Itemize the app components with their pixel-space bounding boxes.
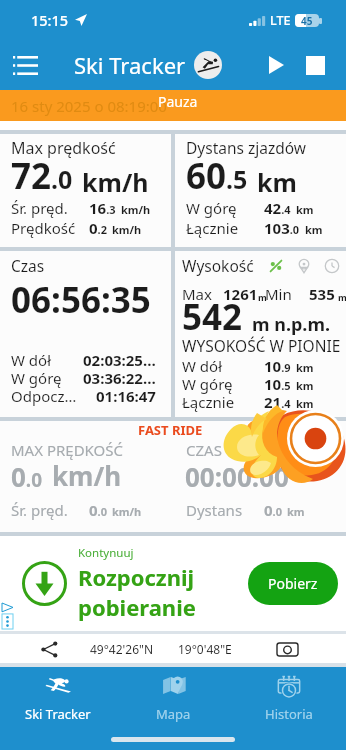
staticText: km	[296, 378, 314, 393]
staticText: W dół	[11, 350, 52, 370]
staticText: km	[296, 202, 314, 217]
staticText: 10.5	[264, 374, 291, 394]
button[interactable]: Stop	[296, 43, 334, 87]
staticText: km/h	[82, 165, 149, 199]
staticText: 16 sty 2025 o 08:19:00	[11, 96, 167, 116]
button[interactable]: Wysokość	[175, 251, 346, 417]
staticText: 0.0	[264, 500, 282, 520]
staticText: Wysokość	[182, 255, 254, 276]
button[interactable]: Kontynuuj	[0, 536, 346, 631]
staticText: Rozpocznij	[78, 562, 195, 592]
staticText: 49°42'26"N	[90, 641, 154, 657]
staticText: Max	[182, 284, 212, 304]
staticText: W górę	[186, 198, 237, 218]
staticText: 1261	[223, 284, 258, 304]
button[interactable]: Mapa	[116, 671, 231, 729]
button[interactable]: Share	[38, 638, 60, 660]
button[interactable]: Record	[287, 410, 344, 467]
staticText: km	[305, 222, 323, 237]
staticText: km	[296, 396, 314, 411]
staticText: 0.0	[89, 500, 107, 520]
staticText: WYSOKOŚĆ W PIONIE	[182, 335, 341, 356]
staticText: 535	[309, 284, 335, 304]
button[interactable]: Menu	[0, 40, 50, 90]
staticText: 72.0	[11, 152, 73, 200]
staticText: Ski Tracker	[74, 50, 186, 80]
staticText: W górę	[11, 368, 62, 388]
staticText: Śr. pręd.	[11, 198, 68, 218]
staticText: Kontynuuj	[78, 545, 134, 561]
staticText: LTE	[270, 12, 291, 29]
button[interactable]: Czas	[0, 251, 171, 417]
button[interactable]: Pobierz	[248, 562, 338, 605]
staticText: km/h	[112, 222, 142, 237]
staticText: 15:15	[31, 10, 69, 30]
staticText: Ski Tracker	[25, 705, 91, 723]
staticText: km/h	[52, 458, 122, 493]
staticText: km	[257, 165, 297, 199]
button[interactable]: Historia	[231, 671, 346, 729]
staticText: 01:16:47	[96, 386, 156, 406]
staticText: 19°0'48"E	[178, 641, 232, 657]
staticText: Śr. pręd.	[11, 500, 68, 520]
staticText: W dół	[182, 356, 223, 376]
staticText: 42.4	[264, 198, 291, 218]
staticText: Czas	[11, 255, 45, 276]
staticText: 02:03:25…	[83, 350, 156, 370]
button[interactable]: Camera	[275, 637, 299, 661]
staticText: 00:00:00	[185, 459, 289, 494]
staticText: m	[258, 291, 265, 303]
staticText: FAST RIDE	[138, 421, 203, 439]
staticText: 16.3	[89, 198, 116, 218]
staticText: Pobierz	[268, 574, 318, 593]
staticText: Odpocz…	[11, 386, 77, 406]
staticText: pobieranie	[78, 592, 196, 622]
staticText: m n.p.m.	[252, 312, 331, 337]
staticText: CZAS	[186, 440, 222, 460]
staticText: 03:36:22…	[83, 368, 156, 388]
staticText: Dystans	[186, 500, 243, 520]
staticText: 0.2	[89, 218, 107, 238]
staticText: 21.4	[264, 392, 291, 412]
staticText: Dystans zjazdów	[186, 137, 307, 158]
staticText: W górę	[182, 374, 233, 394]
staticText: Max prędkość	[11, 137, 116, 159]
staticText: Łącznie	[186, 218, 239, 238]
staticText: Mapa	[156, 705, 191, 723]
button[interactable]: Play	[259, 43, 293, 87]
button[interactable]: Dystans zjazdów	[175, 134, 346, 247]
staticText: Historia	[265, 705, 313, 723]
staticText: 06:56:35	[11, 276, 151, 324]
button[interactable]: Max prędkość	[0, 134, 171, 247]
staticText: 0.0	[11, 459, 43, 494]
staticText: 60.5	[186, 152, 248, 200]
staticText: Prędkość	[11, 218, 76, 238]
staticText: km/h	[121, 202, 151, 217]
staticText: 10.9	[264, 356, 291, 376]
staticText: km/h	[112, 504, 142, 519]
staticText: MAX PRĘDKOŚĆ	[11, 440, 123, 460]
staticText: km	[287, 504, 305, 519]
staticText: Łącznie	[182, 392, 235, 412]
staticText: Pauza	[158, 92, 198, 111]
staticText: m	[338, 291, 346, 303]
staticText: 542	[182, 293, 243, 341]
button[interactable]: Ski Tracker	[0, 671, 116, 729]
staticText: km	[296, 360, 314, 375]
staticText: Min	[265, 284, 292, 304]
staticText: 45	[301, 14, 313, 27]
staticText: 103.0	[264, 218, 300, 238]
